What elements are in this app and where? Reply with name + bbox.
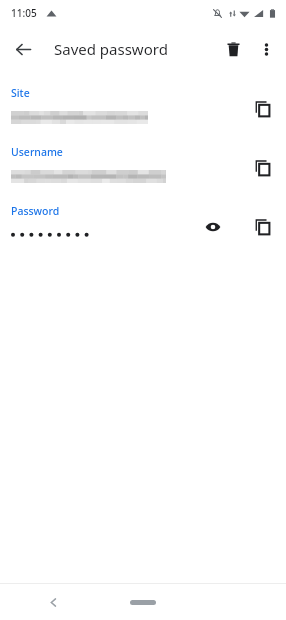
button[interactable]: Copy Site (246, 92, 280, 126)
button[interactable]: Back (6, 32, 40, 66)
staticText: Site (11, 86, 30, 100)
button[interactable]: Show password (196, 210, 230, 244)
button[interactable]: Home (125, 592, 161, 612)
staticText: Username (11, 145, 63, 159)
button[interactable]: Back (40, 589, 66, 615)
staticText: Saved password (54, 39, 168, 59)
staticText: 11:05 (11, 6, 37, 20)
button[interactable]: More options (250, 33, 282, 65)
button[interactable]: Delete (216, 32, 250, 66)
staticText: Password (11, 204, 60, 218)
button[interactable]: Copy password (246, 210, 280, 244)
button[interactable]: Copy Username (246, 151, 280, 185)
